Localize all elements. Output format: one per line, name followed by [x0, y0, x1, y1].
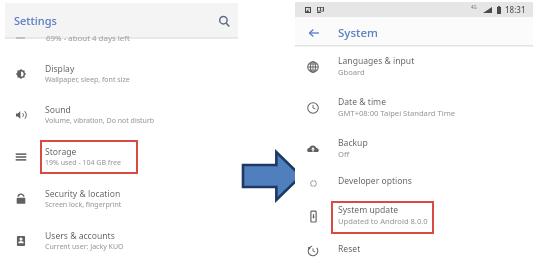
button[interactable]: Languages & input [295, 47, 533, 87]
staticText: Storage [45, 146, 77, 158]
staticText: Reset [338, 243, 361, 255]
staticText: Gboard [338, 67, 365, 77]
staticText: Updated to Android 8.0.0 [338, 216, 428, 226]
staticText: System update [338, 204, 399, 216]
button[interactable]: Backup [295, 129, 533, 169]
staticText: Users & accounts [45, 230, 115, 242]
staticText: System [338, 25, 378, 41]
button[interactable]: Users & accounts [5, 221, 238, 261]
staticText: Current user: Jacky KUO [45, 242, 124, 252]
staticText: 19% used - 104 GB free [45, 158, 121, 168]
staticText: Developer options [338, 175, 412, 187]
button[interactable]: Sound [5, 95, 238, 135]
staticText: GMT+08:00 Taipei Standard Time [338, 108, 456, 118]
button[interactable]: Display [5, 54, 238, 94]
staticText: Screen lock, fingerprint [45, 200, 122, 210]
staticText: Date & time [338, 96, 387, 108]
button[interactable]: Search [215, 11, 235, 31]
staticText: 18:31 [505, 4, 526, 15]
staticText: Sound [45, 104, 71, 116]
button[interactable]: Back [303, 22, 325, 44]
staticText: 69% - about 4 days left [46, 33, 130, 44]
staticText: Languages & input [338, 55, 415, 67]
staticText: Volume, vibration, Do not disturb [45, 116, 155, 126]
button[interactable]: Date & time [295, 88, 533, 128]
staticText: 4G [471, 4, 477, 10]
button[interactable]: Storage [5, 137, 238, 177]
staticText: Wallpaper, sleep, font size [45, 75, 130, 85]
button[interactable]: Reset [295, 231, 533, 261]
button[interactable]: Developer options [295, 163, 533, 203]
staticText: Settings [14, 13, 57, 28]
button[interactable]: Security & location [5, 179, 238, 219]
staticText: Off [338, 149, 350, 159]
staticText: Backup [338, 137, 368, 149]
button[interactable]: System update [295, 196, 533, 236]
staticText: Display [45, 63, 75, 75]
staticText: Security & location [45, 188, 121, 200]
